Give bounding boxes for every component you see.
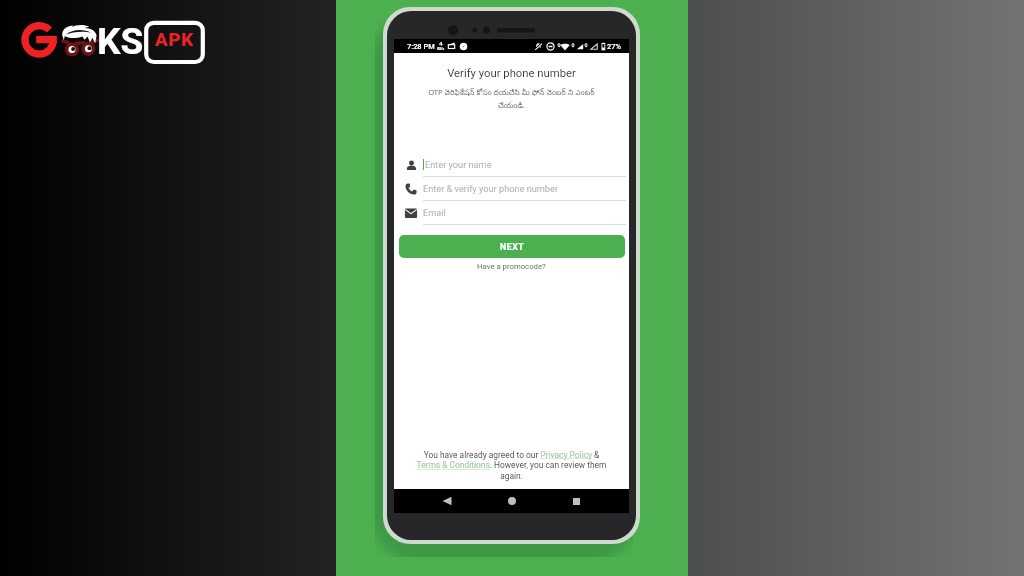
button[interactable]: Email <box>404 201 626 225</box>
button[interactable]: Have a promocode? <box>394 262 629 271</box>
staticText: 27% <box>607 42 621 51</box>
staticText: Have a promocode? <box>477 262 546 271</box>
staticText: Enter your name <box>425 159 492 170</box>
button[interactable]: NEXT <box>399 235 625 258</box>
staticText: APK <box>155 28 194 50</box>
staticText: KB/s <box>437 47 445 51</box>
staticText: OTP వెరిఫికేషన్ కోసం దయచేసి మీ ఫోన్ నెంబ… <box>419 87 604 112</box>
staticText: Verify your phone number <box>394 67 629 80</box>
staticText: 4 <box>439 40 443 47</box>
button[interactable]: Enter & verify your phone number <box>404 177 626 201</box>
staticText: KS <box>97 20 144 63</box>
button[interactable]: Enter your name <box>404 153 626 177</box>
staticText: 7:28 PM <box>407 42 435 51</box>
staticText: Enter & verify your phone number <box>423 183 558 194</box>
staticText: You have already agreed to our Privacy P… <box>414 450 609 481</box>
button[interactable]: Home <box>500 489 524 513</box>
button[interactable]: Back <box>435 489 459 513</box>
staticText: NEXT <box>500 242 525 252</box>
button[interactable]: Recent apps <box>564 489 588 513</box>
staticText: Email <box>423 207 446 218</box>
